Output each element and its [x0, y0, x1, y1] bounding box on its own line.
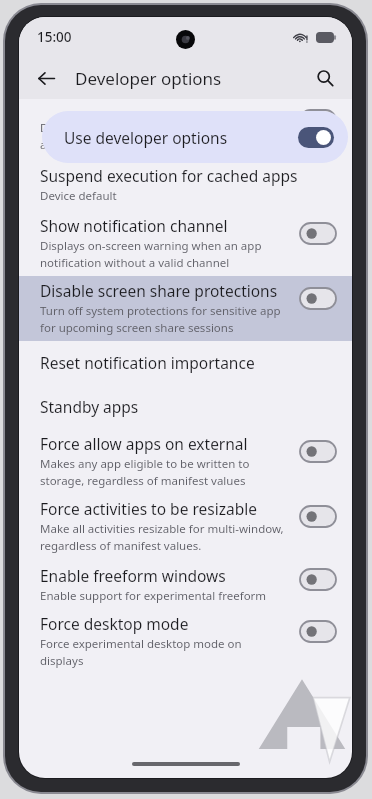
staticText: Force allow apps on external [40, 433, 248, 454]
staticText: notification without a valid channel [40, 255, 230, 271]
button[interactable]: Toggle off [300, 288, 336, 309]
staticText: Show notification channel warnings [40, 215, 286, 236]
staticText: Make all activities resizable for multi-… [40, 521, 284, 537]
button[interactable]: Disable screen share protections [19, 276, 352, 341]
button[interactable]: Search [306, 59, 344, 97]
button[interactable]: Reset notification importance [19, 341, 352, 384]
button[interactable]: Force desktop mode [19, 611, 352, 671]
staticText: Device default [40, 188, 117, 204]
staticText: displays [40, 653, 84, 669]
staticText: Reset notification importance [40, 352, 255, 373]
staticText: Developer options [75, 67, 222, 90]
staticText: regardless of manifest values. [40, 538, 202, 554]
staticText: Disable screen share protections [40, 280, 278, 301]
staticText: Display App Not Responding dialog for ba… [40, 120, 288, 136]
staticText: Standby apps [40, 396, 139, 417]
button[interactable]: Toggle off [300, 621, 336, 642]
button[interactable]: Toggle off [300, 110, 336, 131]
button[interactable]: Display App Not Responding dialog for ba… [19, 117, 352, 159]
button[interactable]: Toggle off [300, 223, 336, 244]
button[interactable]: Enable freeform windows [19, 559, 352, 611]
staticText: Makes any app eligible to be written to … [40, 456, 286, 472]
staticText: Suspend execution for cached apps [40, 165, 298, 186]
staticText: for upcoming screen share sessions [40, 320, 234, 336]
staticText: Force desktop mode [40, 613, 189, 634]
button[interactable]: Standby apps [19, 384, 352, 429]
staticText: Enable freeform windows [40, 565, 226, 586]
button[interactable]: Suspend execution for cached apps [19, 159, 352, 211]
button[interactable]: Toggle on [298, 127, 334, 148]
button[interactable]: Toggle off [300, 441, 336, 462]
staticText: Turn off system protections for sensitiv… [40, 303, 286, 319]
staticText: Use developer options [64, 127, 298, 148]
button[interactable]: Toggle off [300, 569, 336, 590]
staticText: Force activities to be resizable [40, 498, 257, 519]
staticText: Displays on-screen warning when an app p… [40, 238, 286, 254]
staticText: Force experimental desktop mode on secon… [40, 636, 286, 652]
button[interactable]: Force allow apps on external [19, 429, 352, 494]
button[interactable]: Show notification channel warnings [19, 211, 352, 276]
button[interactable]: Back [27, 59, 65, 97]
button[interactable]: Force activities to be resizable [19, 494, 352, 559]
staticText: Enable support for experimental freeform… [40, 588, 286, 604]
button[interactable]: Toggle off [300, 506, 336, 527]
staticText: storage, regardless of manifest values [40, 473, 246, 489]
staticText: apps [40, 137, 67, 153]
staticText: 15:00 [37, 28, 72, 46]
button[interactable]: Use developer options [42, 111, 348, 163]
